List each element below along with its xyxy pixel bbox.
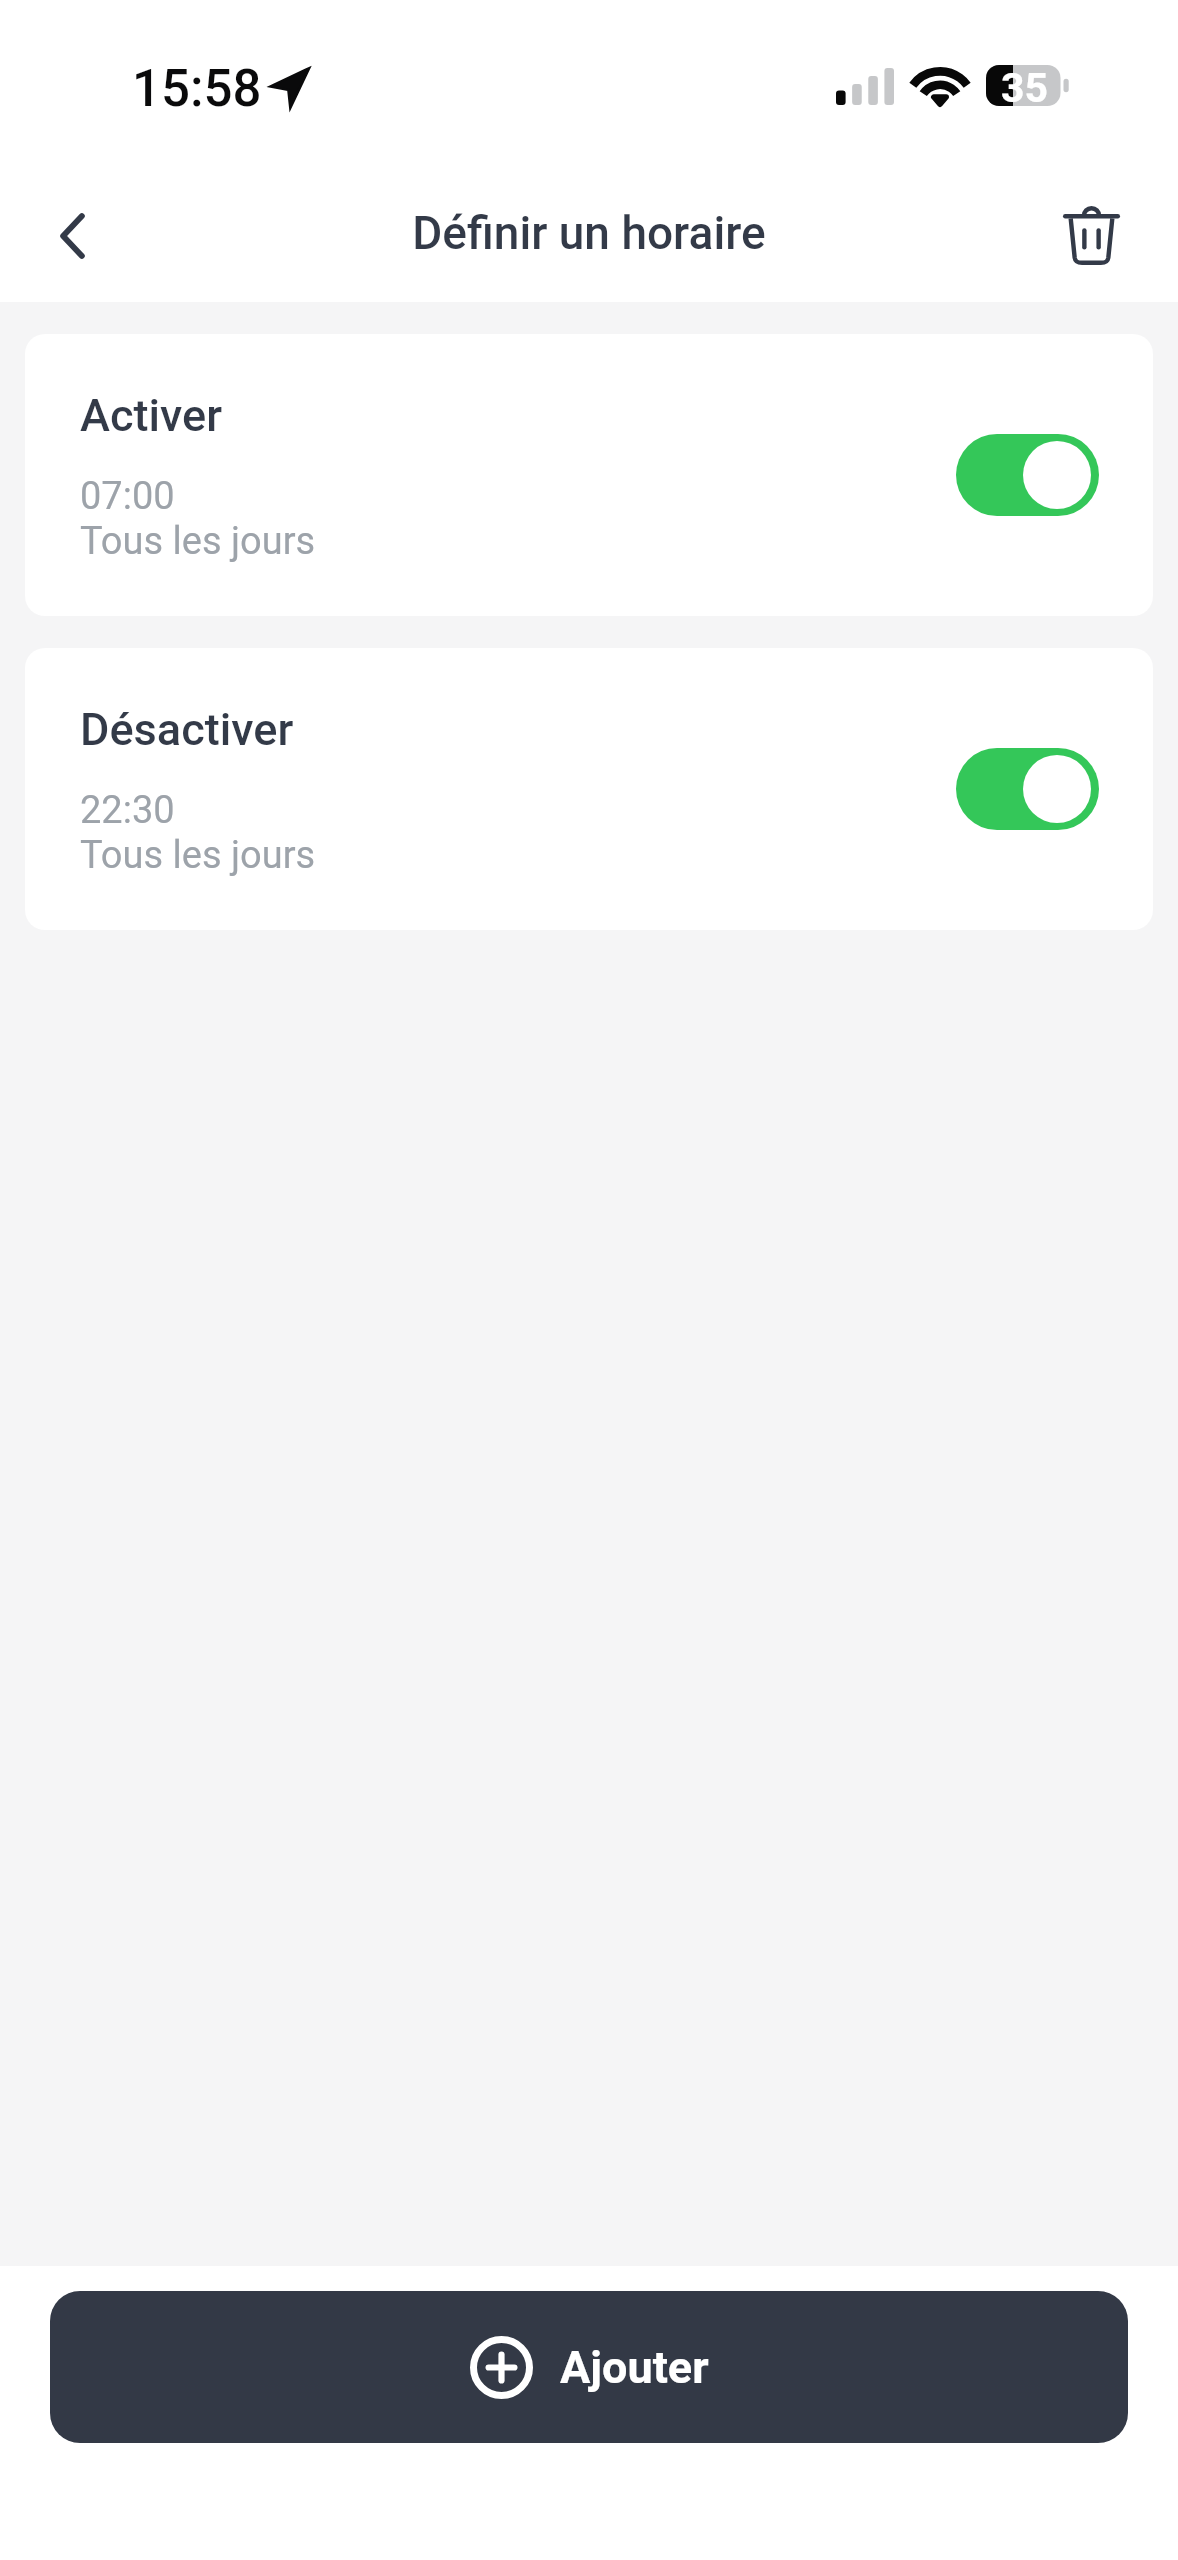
button[interactable]: Activer bbox=[25, 334, 1153, 616]
button[interactable]: Ajouter bbox=[50, 2291, 1128, 2443]
staticText: Tous les jours bbox=[80, 519, 316, 564]
staticText: 22:30 bbox=[80, 788, 175, 833]
button[interactable]: Toggle schedule bbox=[956, 748, 1099, 830]
button[interactable]: Toggle schedule bbox=[956, 434, 1099, 516]
staticText: 07:00 bbox=[80, 474, 175, 519]
button[interactable]: Désactiver bbox=[25, 648, 1153, 930]
button[interactable]: Delete bbox=[1041, 185, 1141, 285]
staticText: 15:58 bbox=[132, 59, 262, 119]
staticText: 35 bbox=[1001, 64, 1049, 105]
staticText: Ajouter bbox=[560, 2341, 709, 2394]
button[interactable]: Back bbox=[22, 186, 122, 286]
staticText: Désactiver bbox=[80, 703, 294, 756]
staticText: Tous les jours bbox=[80, 833, 316, 878]
staticText: Activer bbox=[80, 389, 222, 442]
staticText: Définir un horaire bbox=[412, 206, 766, 260]
